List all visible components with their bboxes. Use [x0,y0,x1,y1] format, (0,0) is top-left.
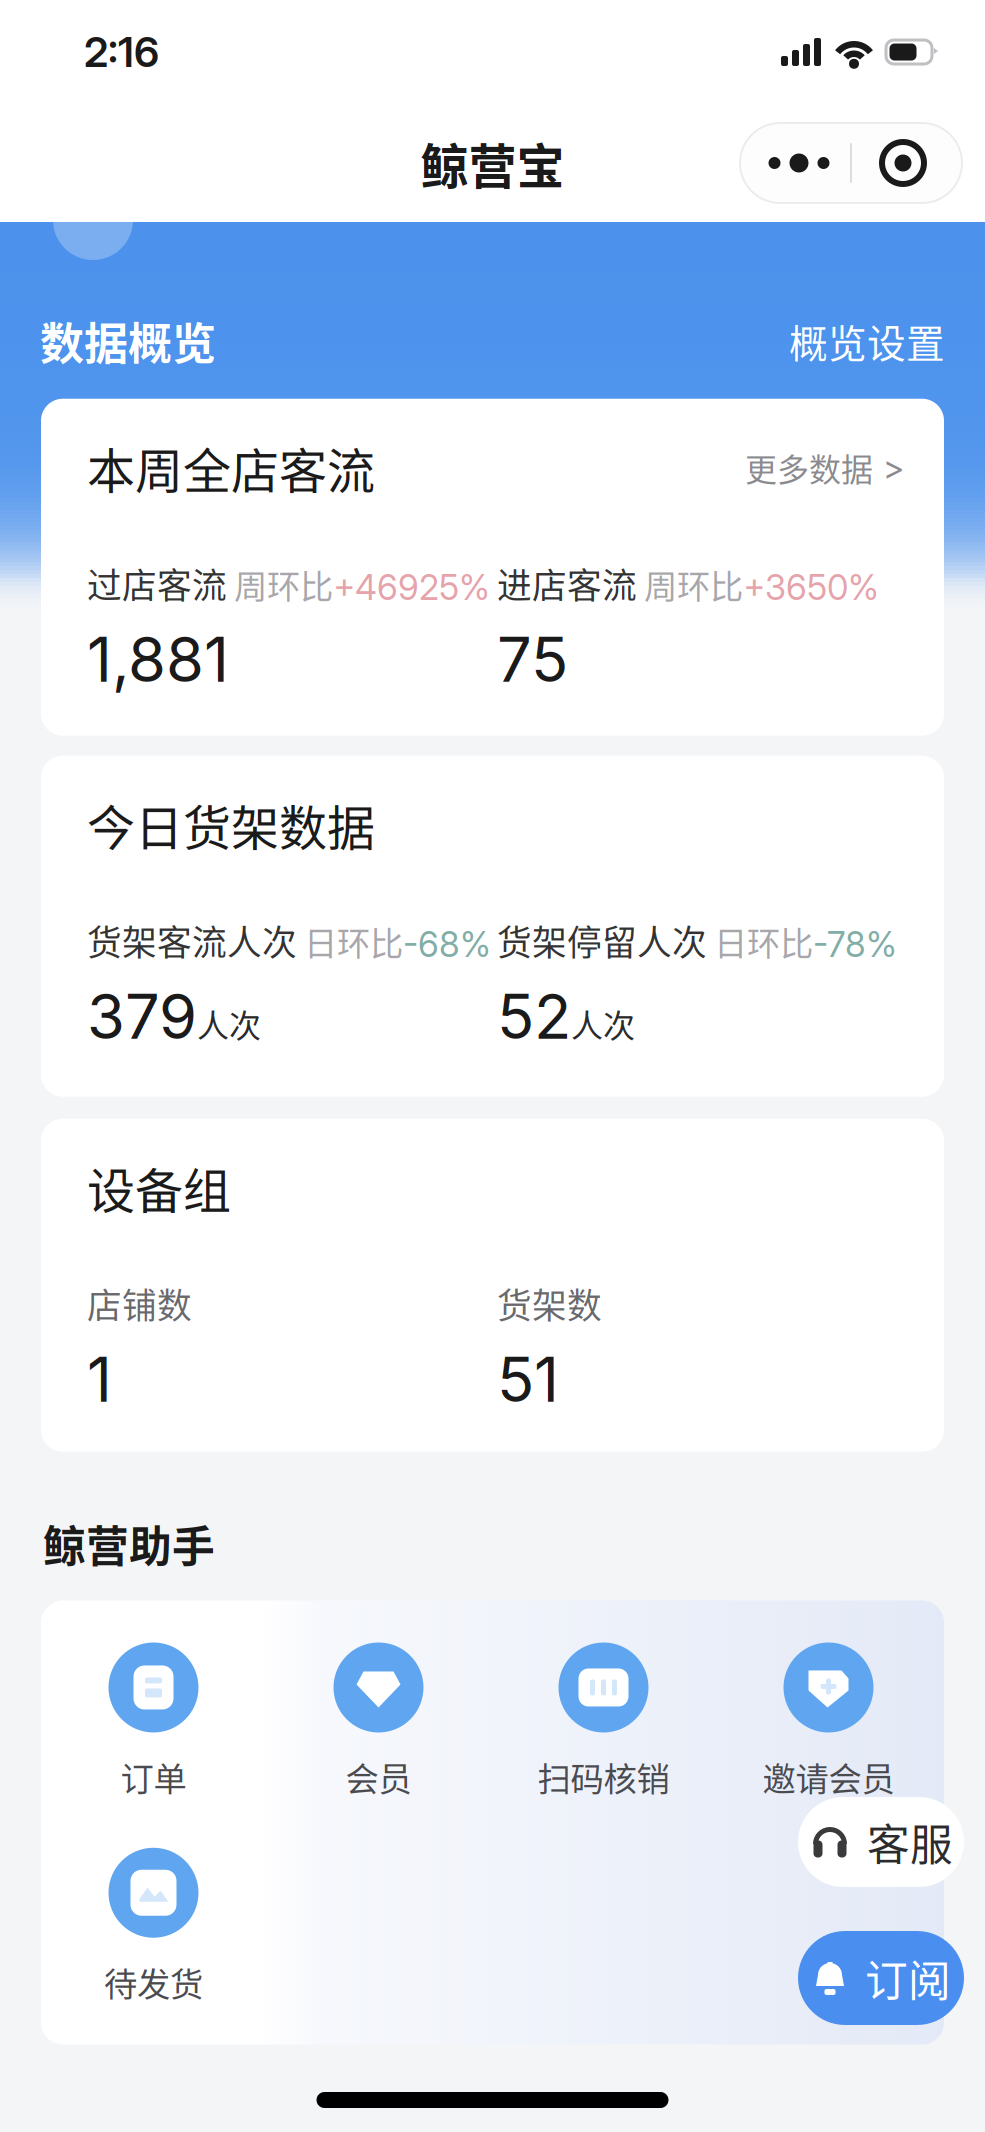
staticText: 邀请会员 [762,1752,894,1801]
staticText: 货架数 [497,1278,602,1328]
staticText: 379 [87,979,197,1054]
staticText: 人次 [197,1000,261,1047]
staticText: 进店客流 [497,558,637,608]
staticText: 75 [497,622,568,697]
staticText: 1 [87,1342,112,1417]
staticText: 待发货 [104,1958,203,2006]
staticText: -78% [813,923,897,965]
staticText: 概览设置 [789,313,945,369]
staticText: 周环比 [637,560,743,608]
staticText: 人次 [571,1000,635,1047]
button[interactable]: More [748,127,850,199]
staticText: 客服 [867,1811,953,1873]
button[interactable]: 订单 [41,1642,266,1801]
staticText: 扫码核销 [537,1752,669,1801]
button[interactable]: 扫码核销 [491,1642,716,1801]
staticText: +3650% [743,566,879,608]
staticText: 1,881 [87,622,229,697]
staticText: 货架停留人次 [497,915,707,965]
staticText: 数据概览 [40,309,216,373]
staticText: 鲸营助手 [43,1513,215,1574]
staticText: 会员 [345,1752,411,1801]
staticText: 更多数据 [745,444,873,491]
button[interactable]: 更多数据 [745,444,904,491]
staticText: 52 [497,979,571,1054]
staticText: 2:16 [84,27,159,77]
button[interactable]: 邀请会员 [716,1642,941,1801]
staticText: 本周全店客流 [87,433,375,502]
staticText: 过店客流 [87,558,227,608]
staticText: -68% [403,923,491,965]
button[interactable]: 订阅 [798,1931,964,2025]
button[interactable]: 待发货 [41,1848,266,2006]
staticText: 店铺数 [87,1278,192,1328]
staticText: 51 [497,1342,559,1417]
staticText: +46925% [333,566,490,608]
button[interactable]: 客服 [798,1797,964,1887]
staticText: 订阅 [865,1947,951,2009]
button[interactable]: Close mini program [852,127,954,199]
staticText: 今日货架数据 [87,790,375,859]
staticText: > [883,447,904,488]
staticText: 鲸营宝 [420,128,564,198]
staticText: 货架客流人次 [87,915,297,965]
staticText: 设备组 [87,1153,231,1222]
button[interactable]: 会员 [266,1642,491,1801]
staticText: 订单 [120,1752,186,1801]
button[interactable]: 概览设置 [789,313,945,369]
staticText: 日环比 [707,917,813,965]
staticText: 日环比 [297,917,403,965]
staticText: 周环比 [227,560,333,608]
